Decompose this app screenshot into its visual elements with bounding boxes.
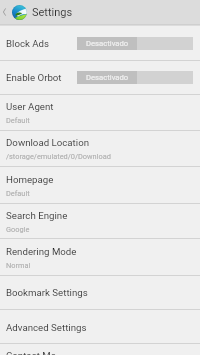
staticText: Default: [6, 189, 30, 198]
staticText: Download Location: [6, 137, 90, 148]
button[interactable]: Block Ads: [0, 26, 200, 61]
staticText: Settings: [32, 6, 73, 19]
button[interactable]: Navigate up: [0, 0, 32, 24]
button[interactable]: Contact Me: [0, 343, 200, 355]
staticText: User Agent: [6, 101, 54, 112]
staticText: /storage/emulated/0/Download: [6, 152, 111, 161]
button[interactable]: Rendering Mode: [0, 239, 200, 276]
button[interactable]: Download Location: [0, 130, 200, 167]
staticText: Google: [6, 225, 30, 234]
button[interactable]: Toggle switch, off: [77, 71, 193, 84]
button[interactable]: Search Engine: [0, 203, 200, 239]
button[interactable]: Homepage: [0, 167, 200, 204]
staticText: Desactivado: [86, 73, 129, 82]
staticText: Block Ads: [6, 38, 50, 49]
staticText: Contact Me: [6, 350, 56, 355]
button[interactable]: Bookmark Settings: [0, 275, 200, 310]
staticText: Bookmark Settings: [6, 287, 88, 298]
staticText: Desactivado: [86, 39, 129, 48]
staticText: Search Engine: [6, 210, 68, 221]
staticText: Rendering Mode: [6, 246, 77, 257]
button[interactable]: User Agent: [0, 94, 200, 130]
button[interactable]: Toggle switch, off: [77, 37, 193, 50]
staticText: Default: [6, 116, 30, 125]
staticText: Homepage: [6, 174, 54, 185]
button[interactable]: Advanced Settings: [0, 310, 200, 344]
staticText: Advanced Settings: [6, 322, 87, 333]
staticText: Enable Orbot: [6, 72, 62, 83]
staticText: Normal: [6, 261, 31, 270]
button[interactable]: Enable Orbot: [0, 60, 200, 94]
